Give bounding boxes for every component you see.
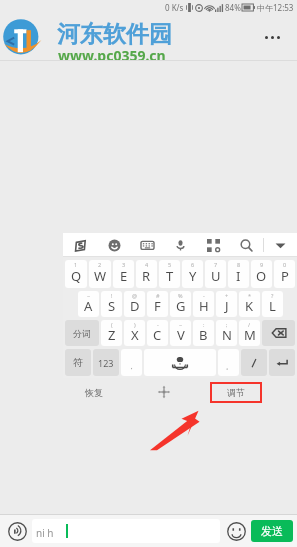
button[interactable]: Enter [269,349,295,376]
staticText: ! [111,292,113,299]
button[interactable]: 123 [93,349,119,376]
staticText: L [269,297,276,315]
staticText: M [244,326,256,344]
staticText: W [94,267,107,285]
staticText: Y [189,267,197,285]
staticText: P [281,267,289,285]
button[interactable]: ~ [78,291,99,317]
button[interactable]: Sogou input [63,233,97,257]
button[interactable]: ( [101,320,122,346]
button[interactable]: 8 [228,260,249,288]
button[interactable]: 符 [65,349,91,376]
staticText: D [130,297,140,315]
staticText: ni h [36,526,54,540]
staticText: ) [134,321,136,328]
staticText: 分词 [73,328,91,339]
staticText: O [256,267,267,285]
button[interactable]: 0 [274,260,295,288]
staticText: * [248,292,252,299]
button[interactable]: * [239,291,260,317]
button[interactable]: - [147,320,168,346]
staticText: www.pc0359.cn [58,46,166,61]
staticText: 。 [226,363,232,371]
button[interactable]: 发送 [251,520,293,542]
staticText: 84% [225,2,241,13]
staticText: % [178,292,183,299]
button[interactable]: 6 [182,260,203,288]
button[interactable]: # [147,291,168,317]
button[interactable]: 。 [218,349,239,376]
staticText: J [225,297,229,315]
button[interactable]: 分词 [65,320,99,346]
staticText: B [199,326,208,344]
staticText: Q [71,267,82,285]
button[interactable]: Emoji [223,518,249,544]
button[interactable]: Move keyboard [153,381,175,403]
button[interactable]: ) [124,320,145,346]
staticText: 发送 [261,524,283,538]
staticText: N [222,326,232,344]
button[interactable]: Voice input [164,233,197,257]
button[interactable]: / [239,320,260,346]
staticText: 5 [168,261,172,268]
staticText: 0 [283,261,287,268]
staticText: T [166,267,174,285]
staticText: C [153,326,162,344]
button[interactable]: 1 [65,260,87,288]
staticText: X [131,326,139,344]
button[interactable]: Delete [262,320,295,346]
staticText: Z [108,326,116,344]
button[interactable]: 9 [251,260,272,288]
button[interactable]: Switch language [241,349,267,376]
staticText: 123 [98,357,114,369]
button[interactable]: Search [230,233,263,257]
staticText: V [177,326,185,344]
staticText: ; [226,321,228,328]
staticText: H [199,297,209,315]
button[interactable]: 3 [113,260,134,288]
button[interactable]: ~ [170,320,191,346]
staticText: 符 [73,356,83,369]
staticText: 6 [191,261,195,268]
staticText: F [154,297,161,315]
button[interactable]: Emoji [97,233,131,257]
staticText: 恢复 [85,387,103,398]
button[interactable]: 恢复 [85,387,103,398]
button[interactable]: ; [216,320,237,346]
staticText: A [84,297,93,315]
button[interactable]: ? [262,291,283,317]
staticText: / [248,321,251,328]
button[interactable]: 5 [159,260,180,288]
staticText: U [211,267,221,285]
staticText: ( [111,321,113,328]
staticText: @ [132,292,137,299]
staticText: 3 [122,261,126,268]
staticText: 2 [98,261,102,268]
button[interactable]: More options [255,20,289,54]
button[interactable]: Voice message [4,518,30,544]
button[interactable]: 4 [136,260,157,288]
button[interactable]: - [193,291,214,317]
staticText: 8 [237,261,241,268]
button[interactable]: , [121,349,142,376]
staticText: 1 [74,261,78,268]
button[interactable]: Keyboard layout [131,233,164,257]
button[interactable]: 7 [205,260,226,288]
staticText: K [245,297,254,315]
button[interactable]: Space [144,349,216,376]
button[interactable]: @ [124,291,145,317]
staticText: - [157,321,159,328]
button[interactable]: Hide keyboard [264,233,297,257]
button[interactable]: ! [101,291,122,317]
button[interactable]: 调节 [210,382,262,403]
button[interactable]: ni h [32,519,220,543]
button[interactable]: 2 [89,260,111,288]
staticText: ? [271,292,274,299]
button[interactable]: : [193,320,214,346]
button[interactable]: % [170,291,191,317]
staticText: S [108,297,116,315]
staticText: I [236,267,241,285]
staticText: 4 [145,261,149,268]
button[interactable]: More tools [197,233,230,257]
button[interactable]: + [216,291,237,317]
